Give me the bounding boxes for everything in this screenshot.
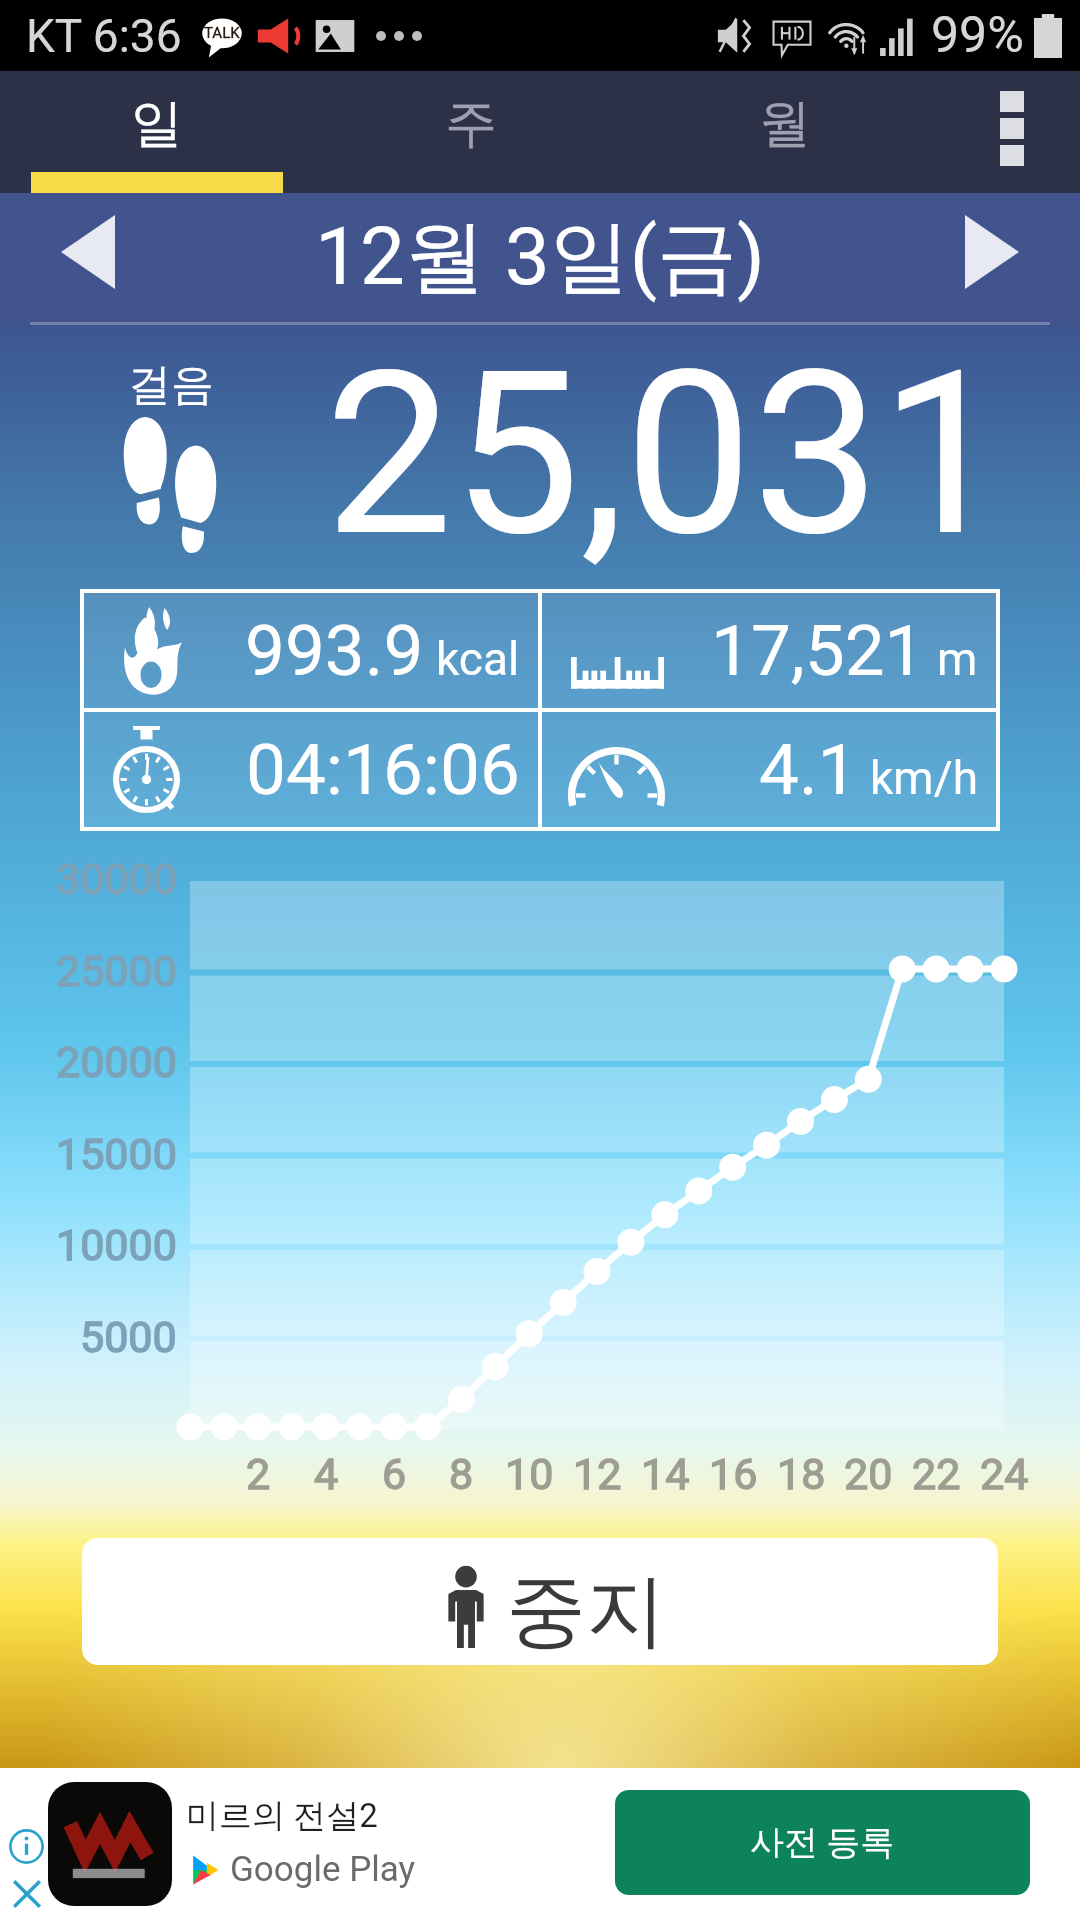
button[interactable]: Ad info xyxy=(9,1829,44,1864)
staticText: 2 xyxy=(246,1449,271,1499)
staticText: km/h xyxy=(870,751,978,805)
button[interactable]: Next day xyxy=(904,193,1080,325)
staticText: 993.9 xyxy=(245,609,424,692)
staticText: TALK xyxy=(204,24,240,42)
staticText: 8 xyxy=(449,1449,474,1499)
staticText: 25000 xyxy=(56,946,177,996)
staticText: kcal xyxy=(436,632,520,686)
button[interactable]: 사전 등록 xyxy=(615,1790,1030,1895)
staticText: 중지 xyxy=(506,1561,666,1662)
staticText: 30000 xyxy=(56,854,177,904)
staticText: 10000 xyxy=(56,1220,177,1270)
staticText: 걸음 xyxy=(128,358,214,412)
staticText: 월 xyxy=(759,91,811,157)
staticText: Google Play xyxy=(230,1849,416,1890)
staticText: 20 xyxy=(844,1449,893,1499)
staticText: 6 xyxy=(382,1449,407,1499)
button[interactable]: 월 xyxy=(628,71,942,193)
staticText: 일 xyxy=(131,91,183,157)
button[interactable]: More options xyxy=(942,71,1080,193)
button[interactable]: Close ad xyxy=(11,1878,43,1910)
staticText: 20000 xyxy=(56,1037,177,1087)
staticText: KT 6:36 xyxy=(26,9,182,63)
staticText: 14 xyxy=(641,1449,690,1499)
button[interactable]: 주 xyxy=(314,71,628,193)
staticText: 5000 xyxy=(80,1312,177,1362)
staticText: 4 xyxy=(314,1449,339,1499)
staticText: 미르의 전설2 xyxy=(186,1795,378,1837)
button[interactable]: 일 xyxy=(0,71,314,193)
staticText: 25,031 xyxy=(325,321,1008,587)
staticText: 4.1 xyxy=(759,728,858,811)
staticText: 사전 등록 xyxy=(750,1821,895,1864)
button[interactable]: 04:16:06 xyxy=(82,710,540,829)
staticText: 04:16:06 xyxy=(246,728,520,811)
button[interactable]: 4.1 xyxy=(540,710,998,829)
staticText: 12 xyxy=(573,1449,622,1499)
staticText: 주 xyxy=(445,91,497,157)
button[interactable]: 중지 xyxy=(82,1538,998,1665)
button[interactable]: 17,521 xyxy=(540,591,998,710)
staticText: 24 xyxy=(980,1449,1029,1499)
staticText: 10 xyxy=(505,1449,554,1499)
button[interactable]: 993.9 xyxy=(82,591,540,710)
staticText: 22 xyxy=(912,1449,961,1499)
staticText: 18 xyxy=(777,1449,826,1499)
staticText: 12월 3일(금) xyxy=(315,207,765,308)
staticText: m xyxy=(937,632,978,686)
staticText: 15000 xyxy=(56,1129,177,1179)
staticText: 17,521 xyxy=(711,609,925,692)
staticText: 16 xyxy=(709,1449,758,1499)
button[interactable]: Previous day xyxy=(0,193,176,325)
button[interactable]: 미르의 전설2 xyxy=(48,1782,172,1906)
staticText: 99% xyxy=(931,6,1024,65)
